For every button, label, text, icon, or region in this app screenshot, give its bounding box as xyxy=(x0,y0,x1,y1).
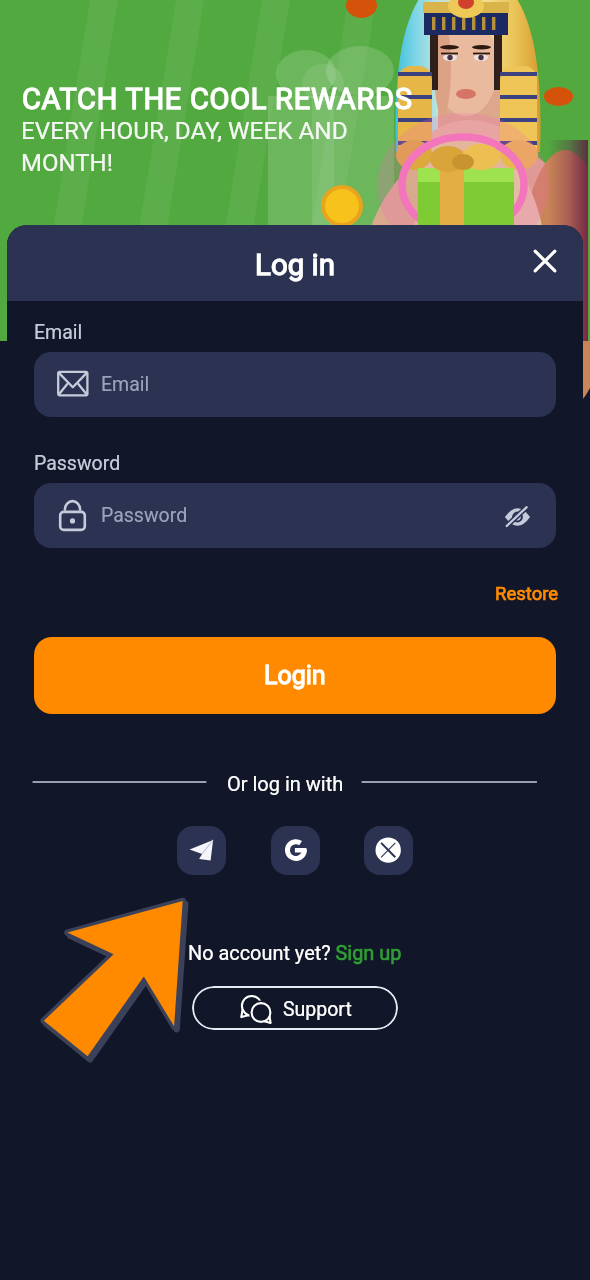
button[interactable]: Restore xyxy=(439,579,559,609)
staticText: MONTH! xyxy=(21,149,113,177)
button[interactable]: Password xyxy=(34,483,556,548)
button[interactable]: Show password xyxy=(495,493,540,538)
staticText: Or log in with xyxy=(227,772,344,795)
staticText: CATCH THE COOL REWARDS xyxy=(22,82,413,116)
button[interactable]: No account yet? Sign up xyxy=(188,939,402,968)
staticText: EVERY HOUR, DAY, WEEK AND xyxy=(21,116,348,144)
button[interactable]: Google xyxy=(271,826,320,875)
staticText: Password xyxy=(34,452,121,475)
staticText: Email xyxy=(101,373,150,396)
staticText: Restore xyxy=(495,583,559,605)
button[interactable]: Support xyxy=(192,986,398,1030)
staticText: Log in xyxy=(255,248,336,283)
button[interactable]: Login xyxy=(34,637,556,714)
button[interactable]: X xyxy=(364,826,413,875)
staticText: Password xyxy=(101,504,188,527)
button[interactable]: Email xyxy=(34,352,556,417)
staticText: Support xyxy=(283,998,352,1021)
button[interactable]: Close xyxy=(519,235,571,287)
button[interactable]: Telegram xyxy=(177,826,226,875)
staticText: Login xyxy=(264,661,326,690)
staticText: Email xyxy=(34,321,83,344)
